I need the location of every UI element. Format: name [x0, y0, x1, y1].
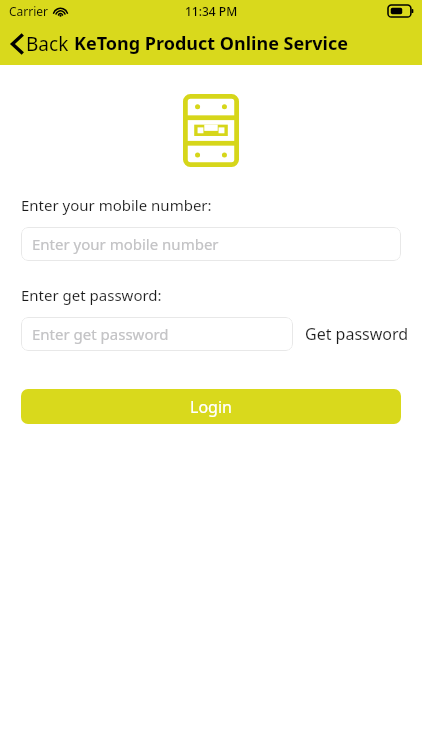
staticText: Carrier	[9, 3, 49, 19]
button[interactable]: Login	[21, 389, 401, 424]
button[interactable]: Enter your mobile number	[21, 227, 401, 261]
button[interactable]: Get password	[293, 317, 409, 351]
staticText: 11:34 PM	[185, 3, 238, 19]
staticText: Enter your mobile number	[32, 234, 219, 254]
staticText: Enter your mobile number:	[21, 195, 212, 215]
button[interactable]: Back	[0, 27, 75, 61]
staticText: Enter get password:	[21, 285, 162, 305]
button[interactable]: Enter get password	[21, 317, 293, 351]
staticText: Back	[26, 31, 69, 57]
staticText: Get password	[305, 323, 409, 345]
staticText: Login	[190, 396, 232, 418]
staticText: KeTong Product Online Service	[74, 31, 349, 56]
staticText: Enter get password	[32, 324, 169, 344]
